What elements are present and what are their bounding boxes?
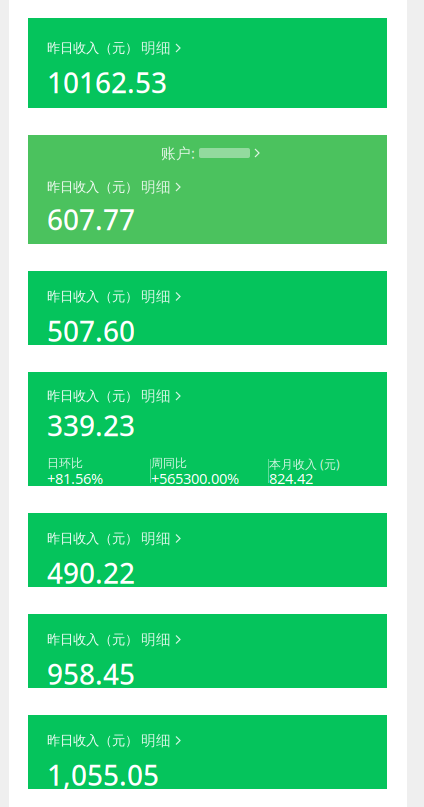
- staticText: 339.23: [47, 407, 135, 444]
- button[interactable]: 昨日收入（元）: [28, 614, 387, 688]
- staticText: +81.56%: [47, 468, 103, 488]
- button[interactable]: 昨日收入（元）: [28, 271, 387, 345]
- staticText: 明细: [141, 39, 171, 57]
- staticText: 明细: [141, 287, 171, 305]
- button[interactable]: 昨日收入（元）: [28, 715, 387, 789]
- staticText: 账户:: [161, 143, 199, 163]
- staticText: 昨日收入（元）: [47, 530, 138, 547]
- staticText: 1,055.05: [47, 756, 159, 793]
- button[interactable]: 昨日收入（元）: [28, 18, 387, 108]
- staticText: 本月收入 (元): [269, 456, 340, 472]
- staticText: 490.22: [47, 554, 135, 591]
- staticText: +565300.00%: [151, 468, 239, 488]
- staticText: 昨日收入（元）: [47, 288, 138, 305]
- staticText: 明细: [141, 630, 171, 648]
- staticText: 10162.53: [47, 64, 167, 101]
- button[interactable]: 昨日收入（元）: [28, 372, 387, 486]
- button[interactable]: 账户:: [28, 135, 387, 244]
- staticText: 607.77: [47, 201, 135, 238]
- staticText: 958.45: [47, 655, 135, 692]
- staticText: 周同比: [151, 456, 187, 471]
- staticText: 明细: [141, 178, 171, 196]
- staticText: 昨日收入（元）: [47, 732, 138, 749]
- staticText: 明细: [141, 731, 171, 749]
- staticText: 昨日收入（元）: [47, 388, 138, 404]
- staticText: 昨日收入（元）: [47, 631, 138, 648]
- staticText: 824.42: [269, 468, 313, 488]
- staticText: 日环比: [47, 456, 83, 471]
- staticText: 明细: [141, 387, 171, 405]
- staticText: 507.60: [47, 312, 135, 349]
- button[interactable]: 昨日收入（元）: [28, 513, 387, 587]
- staticText: 昨日收入（元）: [47, 40, 138, 56]
- staticText: 明细: [141, 529, 171, 547]
- staticText: 昨日收入（元）: [47, 179, 138, 195]
